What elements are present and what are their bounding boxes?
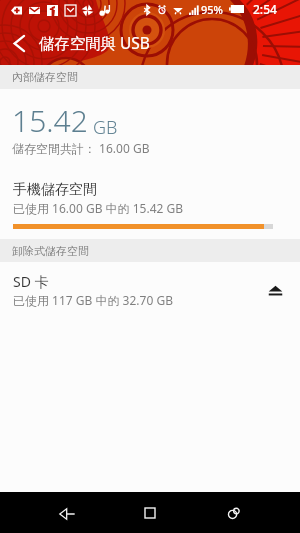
staticText: 2:54 <box>253 1 277 17</box>
staticText: 內部儲存空間 <box>12 70 78 84</box>
staticText: 儲存空間共計： 16.00 GB <box>12 140 150 156</box>
staticText: 已使用 16.00 GB 中的 15.42 GB <box>13 200 184 216</box>
staticText: 95% <box>201 2 223 17</box>
button[interactable]: Eject <box>259 274 291 306</box>
button[interactable]: Recent apps <box>212 492 256 533</box>
staticText: 手機儲存空間 <box>13 181 97 199</box>
button[interactable]: Back <box>0 24 39 63</box>
button[interactable]: 手機儲存空間 <box>0 181 300 229</box>
staticText: SD 卡 <box>13 272 49 291</box>
button[interactable]: Home <box>128 492 172 533</box>
staticText: 已使用 117 GB 中的 32.70 GB <box>13 292 173 308</box>
button[interactable]: Back <box>45 493 89 533</box>
staticText: 卸除式儲存空間 <box>12 244 89 258</box>
staticText: 15.42 <box>12 100 88 141</box>
staticText: 儲存空間與 USB <box>39 33 150 54</box>
button[interactable]: SD 卡 <box>0 272 300 308</box>
staticText: GB <box>93 115 118 140</box>
